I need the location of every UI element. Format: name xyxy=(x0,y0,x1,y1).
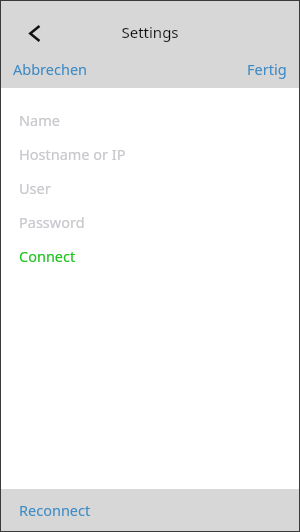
button[interactable]: Name xyxy=(1,103,299,137)
staticText: User xyxy=(19,178,51,198)
staticText: Name xyxy=(19,110,60,130)
button[interactable]: Password xyxy=(1,205,299,239)
button[interactable]: Abbrechen xyxy=(7,56,94,82)
staticText: Connect xyxy=(19,246,76,266)
staticText: Abbrechen xyxy=(13,59,88,79)
staticText: Fertig xyxy=(247,59,287,79)
staticText: Reconnect xyxy=(19,500,91,520)
button[interactable]: Hostname or IP xyxy=(1,137,299,171)
button[interactable]: User xyxy=(1,171,299,205)
button[interactable]: Reconnect xyxy=(13,496,97,524)
button[interactable]: Back xyxy=(19,18,51,48)
staticText: Hostname or IP xyxy=(19,144,126,164)
button[interactable]: Connect xyxy=(1,239,299,273)
staticText: Settings xyxy=(1,22,299,42)
staticText: Password xyxy=(19,212,85,232)
button[interactable]: Fertig xyxy=(241,56,293,82)
